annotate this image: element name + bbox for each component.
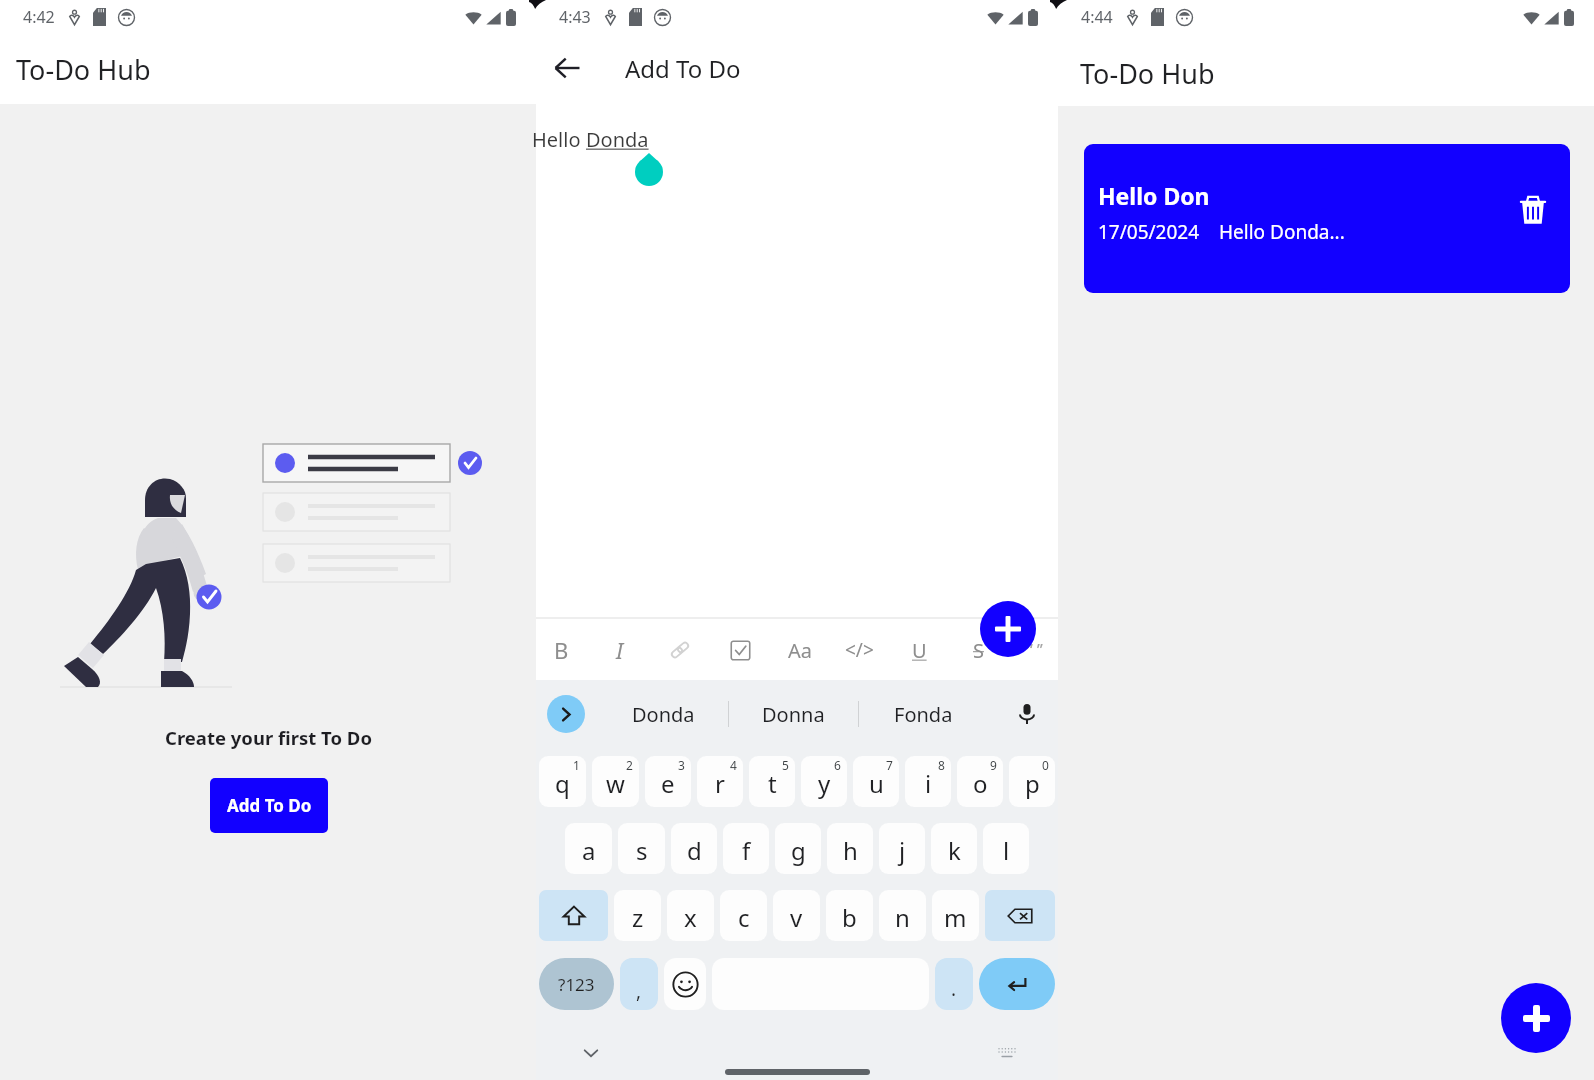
staticText: h xyxy=(843,834,858,867)
button[interactable]: v xyxy=(773,890,820,941)
button[interactable]: Format option xyxy=(895,630,943,670)
button[interactable]: Donda xyxy=(598,680,728,748)
button[interactable]: a xyxy=(565,823,612,874)
staticText: p xyxy=(1025,767,1040,800)
button[interactable]: f xyxy=(723,823,769,874)
staticText: 6 xyxy=(834,757,841,773)
staticText: 4:44 xyxy=(1081,6,1113,28)
staticText: Donna xyxy=(762,701,825,728)
button[interactable]: Format option xyxy=(1011,630,1059,670)
staticText: x xyxy=(684,901,697,934)
staticText: ?123 xyxy=(558,973,595,996)
button[interactable]: k xyxy=(931,823,977,874)
button[interactable]: q xyxy=(539,756,586,807)
button[interactable]: e xyxy=(645,756,691,807)
staticText: i xyxy=(925,767,932,800)
button[interactable]: z xyxy=(614,890,661,941)
button[interactable]: Add xyxy=(980,601,1036,657)
button[interactable]: Add to do xyxy=(1501,983,1571,1053)
button[interactable]: c xyxy=(720,890,767,941)
staticText: I xyxy=(616,635,624,665)
button[interactable]: m xyxy=(932,890,979,941)
staticText: S xyxy=(973,637,984,664)
button[interactable]: Donna xyxy=(729,680,858,748)
button[interactable]: . xyxy=(935,958,973,1010)
button[interactable]: o xyxy=(957,756,1003,807)
button[interactable]: h xyxy=(827,823,873,874)
button[interactable]: l xyxy=(983,823,1029,874)
staticText: r xyxy=(715,767,725,800)
button[interactable]: Hello Don xyxy=(1084,144,1570,293)
button[interactable]: Delete xyxy=(1513,190,1553,230)
staticText: g xyxy=(791,834,806,867)
staticText: f xyxy=(742,834,751,867)
button[interactable]: n xyxy=(879,890,926,941)
button[interactable]: Enter xyxy=(979,958,1055,1010)
staticText: 9 xyxy=(990,757,997,773)
button[interactable]: y xyxy=(801,756,847,807)
staticText: w xyxy=(606,767,625,800)
button[interactable]: Emoji xyxy=(664,958,706,1010)
staticText: Hello Donda... xyxy=(1219,219,1345,245)
button[interactable]: Format option xyxy=(835,630,883,670)
staticText: s xyxy=(636,834,648,867)
staticText: 5 xyxy=(782,757,789,773)
staticText: 1 xyxy=(573,757,580,773)
button[interactable]: p xyxy=(1009,756,1055,807)
staticText: 0 xyxy=(1042,757,1049,773)
staticText: 8 xyxy=(938,757,945,773)
staticText: n xyxy=(895,901,910,934)
staticText: . xyxy=(951,976,957,1002)
button[interactable]: Voice input xyxy=(1010,697,1044,731)
staticText: Hello xyxy=(532,126,586,153)
button[interactable]: Format option xyxy=(716,630,764,670)
staticText: m xyxy=(944,901,967,934)
button[interactable]: Back xyxy=(541,42,593,94)
staticText: Aa xyxy=(788,637,812,664)
button[interactable]: Format option xyxy=(954,630,1002,670)
staticText: Add To Do xyxy=(625,52,741,85)
button[interactable]: Hide keyboard xyxy=(576,1038,606,1068)
button[interactable]: d xyxy=(671,823,717,874)
button[interactable]: w xyxy=(592,756,639,807)
button[interactable]: , xyxy=(620,958,658,1010)
staticText: Donda xyxy=(632,701,695,728)
button[interactable]: Format option xyxy=(656,630,704,670)
staticText: To-Do Hub xyxy=(16,51,151,88)
staticText: 4:42 xyxy=(23,6,55,28)
staticText: 17/05/2024 xyxy=(1098,219,1200,245)
staticText: U xyxy=(912,637,927,664)
button[interactable]: Add To Do xyxy=(210,778,328,833)
button[interactable]: Format option xyxy=(596,630,644,670)
button[interactable]: j xyxy=(879,823,925,874)
button[interactable]: s xyxy=(618,823,665,874)
button[interactable]: g xyxy=(775,823,821,874)
staticText: 4 xyxy=(730,757,737,773)
staticText: </> xyxy=(845,637,874,663)
staticText: b xyxy=(842,901,857,934)
button[interactable]: Change keyboard xyxy=(994,1039,1020,1065)
button[interactable]: x xyxy=(667,890,714,941)
staticText: v xyxy=(790,901,803,934)
button[interactable]: Format option xyxy=(537,630,585,670)
button[interactable]: r xyxy=(697,756,743,807)
staticText: t xyxy=(768,767,777,800)
staticText: “ ” xyxy=(1027,639,1043,661)
button[interactable]: b xyxy=(826,890,873,941)
staticText: 2 xyxy=(626,757,633,773)
button[interactable]: Expand suggestions xyxy=(547,695,585,733)
button[interactable]: Shift xyxy=(539,890,608,941)
button[interactable]: Backspace xyxy=(985,890,1055,941)
staticText: Fonda xyxy=(894,701,953,728)
button[interactable]: u xyxy=(853,756,899,807)
button[interactable]: Fonda xyxy=(859,680,988,748)
staticText: To-Do Hub xyxy=(1080,55,1215,92)
staticText: 7 xyxy=(886,757,893,773)
button[interactable]: Format option xyxy=(776,630,824,670)
button[interactable]: ?123 xyxy=(539,958,614,1010)
staticText: 3 xyxy=(678,757,685,773)
button[interactable]: t xyxy=(749,756,795,807)
button[interactable]: i xyxy=(905,756,951,807)
staticText: o xyxy=(973,767,988,800)
